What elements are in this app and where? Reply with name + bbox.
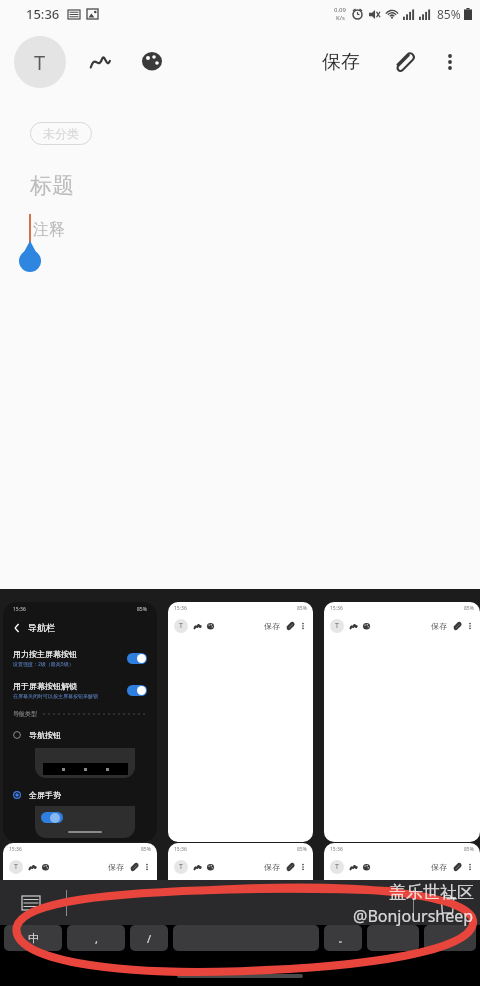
staticText: 导航栏 xyxy=(28,622,55,633)
staticText: , xyxy=(95,931,98,946)
staticText: 15:36 xyxy=(174,846,187,853)
button[interactable]: More options xyxy=(430,42,470,82)
staticText: 全屏手势 xyxy=(29,790,61,800)
staticText: 在屏幕关闭时可以按主屏幕按钮来解锁 xyxy=(13,693,98,699)
staticText: 导航按钮 xyxy=(29,730,61,740)
staticText: 。 xyxy=(338,931,349,945)
button[interactable]: 15:36 xyxy=(168,843,313,880)
button[interactable] xyxy=(424,925,476,951)
staticText: T xyxy=(335,621,339,631)
staticText: T xyxy=(335,862,339,872)
staticText: 标题 xyxy=(30,172,74,200)
staticText: 保存 xyxy=(108,862,124,872)
button[interactable] xyxy=(127,653,147,664)
staticText: 85% xyxy=(464,605,474,612)
staticText: 85% xyxy=(141,846,151,853)
staticText: 15:36 xyxy=(26,5,60,23)
button[interactable]: Attach xyxy=(384,42,424,82)
staticText: 0.09 xyxy=(334,6,346,14)
button[interactable]: 15:36 xyxy=(3,843,157,880)
staticText: 中 xyxy=(28,931,39,945)
button[interactable] xyxy=(367,925,419,951)
button[interactable]: 。 xyxy=(324,925,362,951)
staticText: @Bonjoursheep xyxy=(353,905,474,927)
button[interactable] xyxy=(127,685,147,696)
staticText: T xyxy=(34,49,46,76)
staticText: 用力按主屏幕按钮 xyxy=(13,649,77,659)
staticText: 85% xyxy=(297,846,307,853)
button[interactable]: Keyboard xyxy=(18,890,44,916)
staticText: K/s xyxy=(336,14,345,22)
button[interactable]: , xyxy=(67,925,125,951)
staticText: T xyxy=(14,862,18,872)
button[interactable]: 15:36 xyxy=(3,602,157,842)
staticText: 保存 xyxy=(431,621,447,631)
staticText: T xyxy=(179,862,183,872)
staticText: 保存 xyxy=(322,50,360,74)
button[interactable]: 保存 xyxy=(312,42,370,82)
staticText: / xyxy=(147,931,152,946)
button[interactable]: Pen xyxy=(80,42,120,82)
staticText: 保存 xyxy=(264,621,280,631)
button[interactable]: Delete xyxy=(434,890,460,916)
staticText: 85% xyxy=(464,846,474,853)
staticText: 15:36 xyxy=(9,846,22,853)
staticText: 保存 xyxy=(264,862,280,872)
staticText: 设置强度：2级（最高5级） xyxy=(13,661,74,668)
button[interactable]: 未分类 xyxy=(30,122,92,145)
button[interactable]: Text mode xyxy=(14,36,66,88)
button[interactable]: 中 xyxy=(4,925,62,951)
staticText: 导航类型 xyxy=(13,710,37,718)
staticText: 15:36 xyxy=(330,846,343,853)
staticText: 注释 xyxy=(33,220,65,240)
staticText: 15:36 xyxy=(13,606,26,613)
staticText: 用于屏幕按钮解锁 xyxy=(13,681,77,691)
staticText: 85% xyxy=(437,6,461,22)
button[interactable]: 15:36 xyxy=(168,602,313,842)
staticText: 保存 xyxy=(431,862,447,872)
staticText: 未分类 xyxy=(43,126,79,141)
staticText: 15:36 xyxy=(174,605,187,612)
staticText: 85% xyxy=(297,605,307,612)
button[interactable] xyxy=(173,925,319,951)
button[interactable]: Palette xyxy=(132,42,172,82)
staticText: 盖乐世社区 xyxy=(389,882,474,903)
staticText: 15:36 xyxy=(330,605,343,612)
staticText: 85% xyxy=(137,606,147,613)
button[interactable]: 15:36 xyxy=(324,602,480,842)
button[interactable]: 15:36 xyxy=(324,843,480,880)
button[interactable]: / xyxy=(130,925,168,951)
staticText: T xyxy=(179,621,183,631)
